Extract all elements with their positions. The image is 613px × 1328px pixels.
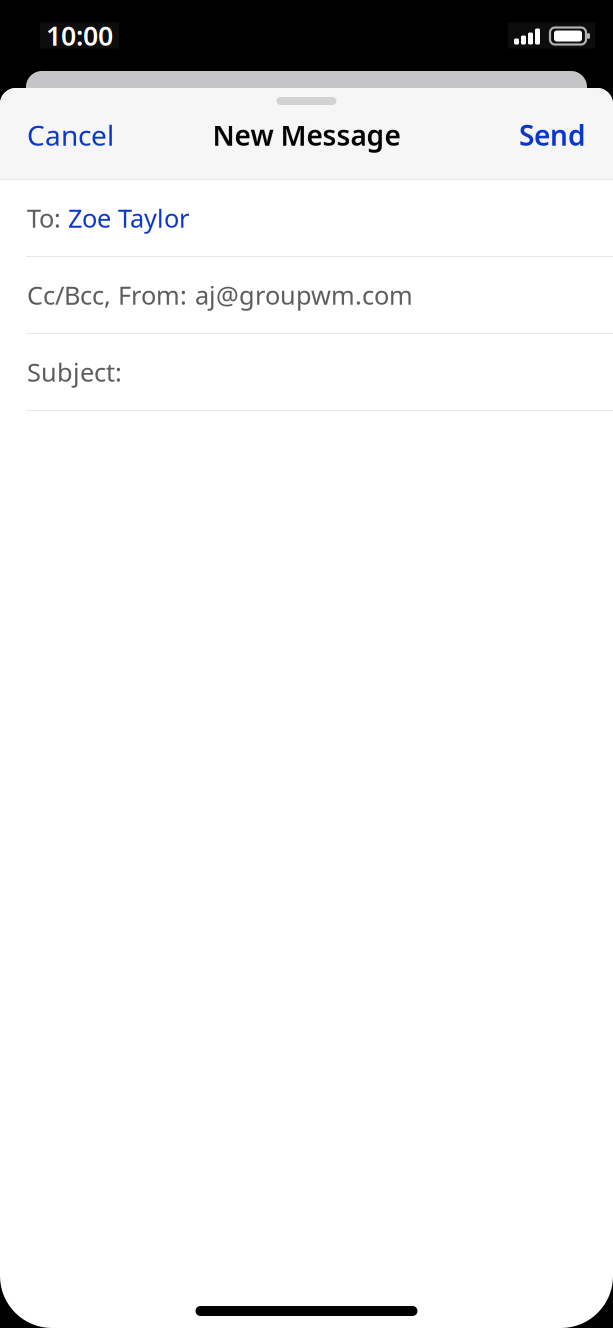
staticText: 10:00 — [46, 18, 113, 53]
button[interactable]: To: — [0, 180, 613, 257]
button[interactable]: Cc/Bcc, From: — [0, 257, 613, 334]
button[interactable]: Cancel — [27, 106, 128, 164]
staticText: Subject: — [27, 355, 122, 389]
staticText: New Message — [212, 116, 400, 154]
staticText: Send — [519, 116, 586, 154]
staticText: Zoe Taylor — [68, 201, 189, 235]
button[interactable]: Subject: — [0, 334, 613, 411]
staticText: aj@groupwm.com — [195, 278, 413, 312]
staticText: Cancel — [27, 116, 114, 154]
staticText: Cc/Bcc, From: — [27, 278, 187, 312]
staticText: To: — [27, 201, 61, 235]
button[interactable]: Send — [505, 106, 586, 164]
